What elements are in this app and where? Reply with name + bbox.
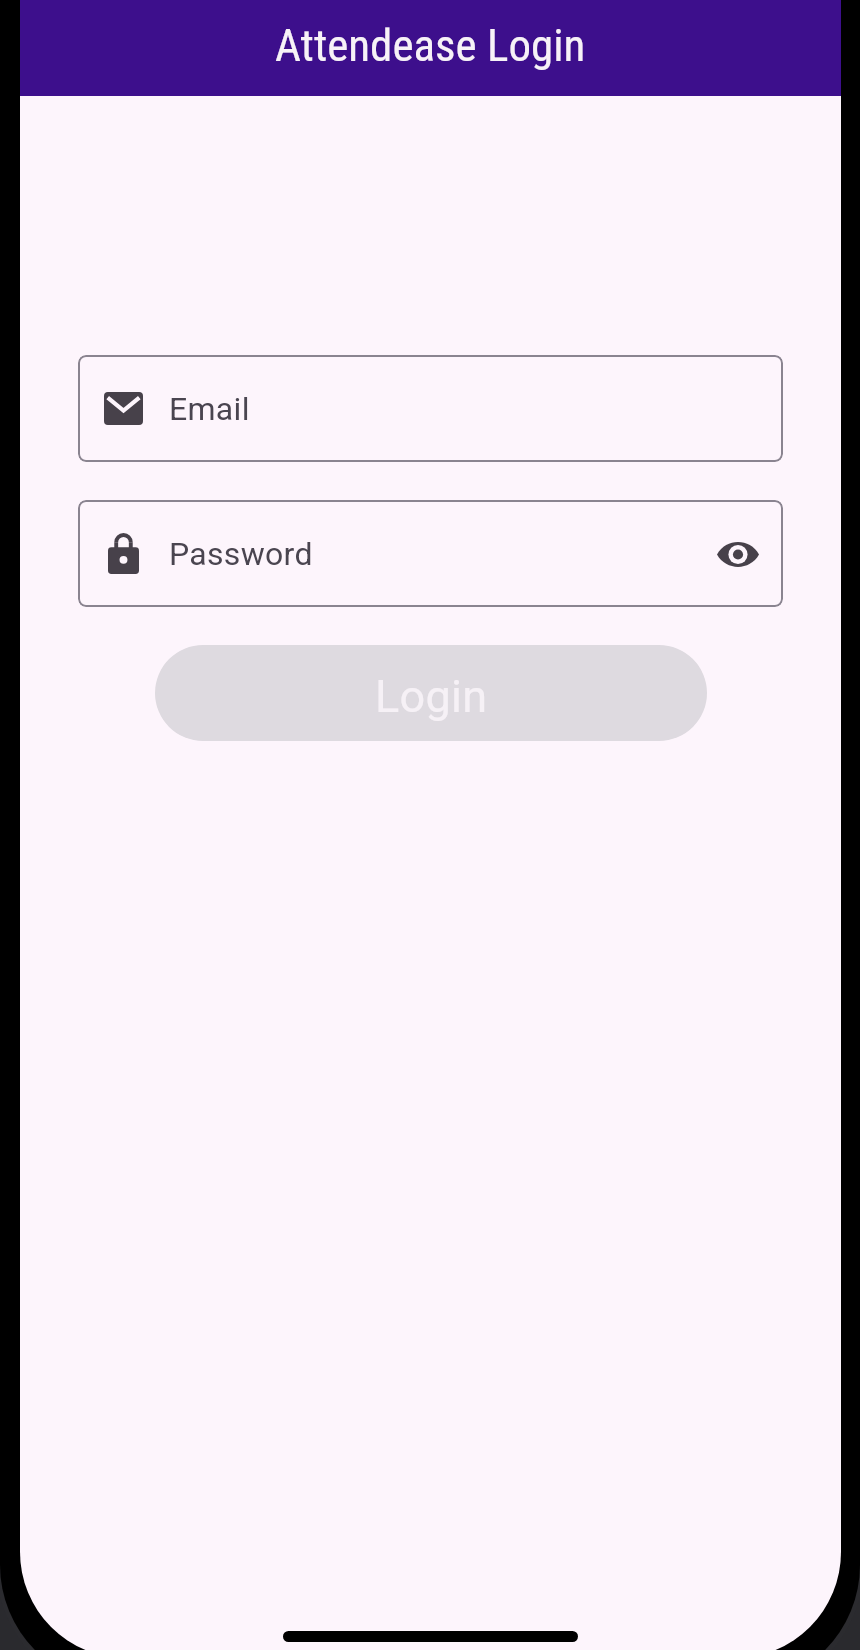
button[interactable]: Password [78,500,783,607]
button[interactable]: Show password [708,524,768,584]
button[interactable]: Email [78,355,783,462]
staticText: Attendease Login [275,19,586,72]
staticText: Password [169,535,313,573]
button[interactable]: Login [155,645,707,741]
staticText: Login [375,670,488,723]
staticText: Email [169,390,250,428]
